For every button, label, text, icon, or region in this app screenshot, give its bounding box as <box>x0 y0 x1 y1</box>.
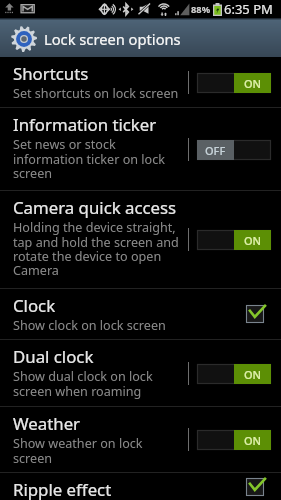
staticText: 6:35 PM <box>224 0 273 18</box>
button[interactable]: ON <box>197 430 271 450</box>
button[interactable]: ON <box>197 364 271 384</box>
staticText: Set shortcuts on lock screen <box>13 85 179 102</box>
button[interactable]: Camera quick access <box>0 191 281 288</box>
staticText: Information ticker <box>13 113 157 136</box>
staticText: Show dual clock on lock screen when roam… <box>13 368 153 400</box>
button[interactable]: ON <box>197 73 271 93</box>
button[interactable]: Toggle option <box>242 301 268 327</box>
staticText: Camera quick access <box>13 196 177 219</box>
staticText: Holding the device straight, tap and hol… <box>13 219 179 279</box>
staticText: Weather <box>13 412 81 435</box>
staticText: Clock <box>13 294 56 317</box>
staticText: ON <box>244 433 262 448</box>
staticText: Show weather on lock screen <box>13 435 143 467</box>
button[interactable]: Shortcuts <box>0 57 281 107</box>
staticText: ON <box>244 76 262 91</box>
staticText: Lock screen options <box>44 29 181 49</box>
staticText: Ripple effect <box>13 478 112 500</box>
button[interactable]: Clock <box>0 289 281 339</box>
staticText: Show clock on lock screen <box>13 317 166 334</box>
button[interactable]: Toggle option <box>242 474 268 500</box>
staticText: Set news or stock information ticker on … <box>13 136 165 182</box>
button[interactable]: Ripple effect <box>0 473 281 500</box>
staticText: Dual clock <box>13 345 94 368</box>
staticText: OFF <box>205 143 226 158</box>
button[interactable]: ON <box>197 230 271 250</box>
button[interactable]: OFF <box>197 140 271 160</box>
staticText: ON <box>244 233 262 248</box>
staticText: 88% <box>191 3 211 16</box>
button[interactable]: Weather <box>0 407 281 472</box>
other: Settings <box>11 26 37 52</box>
button[interactable]: Dual clock <box>0 340 281 406</box>
staticText: ON <box>244 367 262 382</box>
staticText: Shortcuts <box>13 62 89 85</box>
button[interactable]: Information ticker <box>0 108 281 190</box>
